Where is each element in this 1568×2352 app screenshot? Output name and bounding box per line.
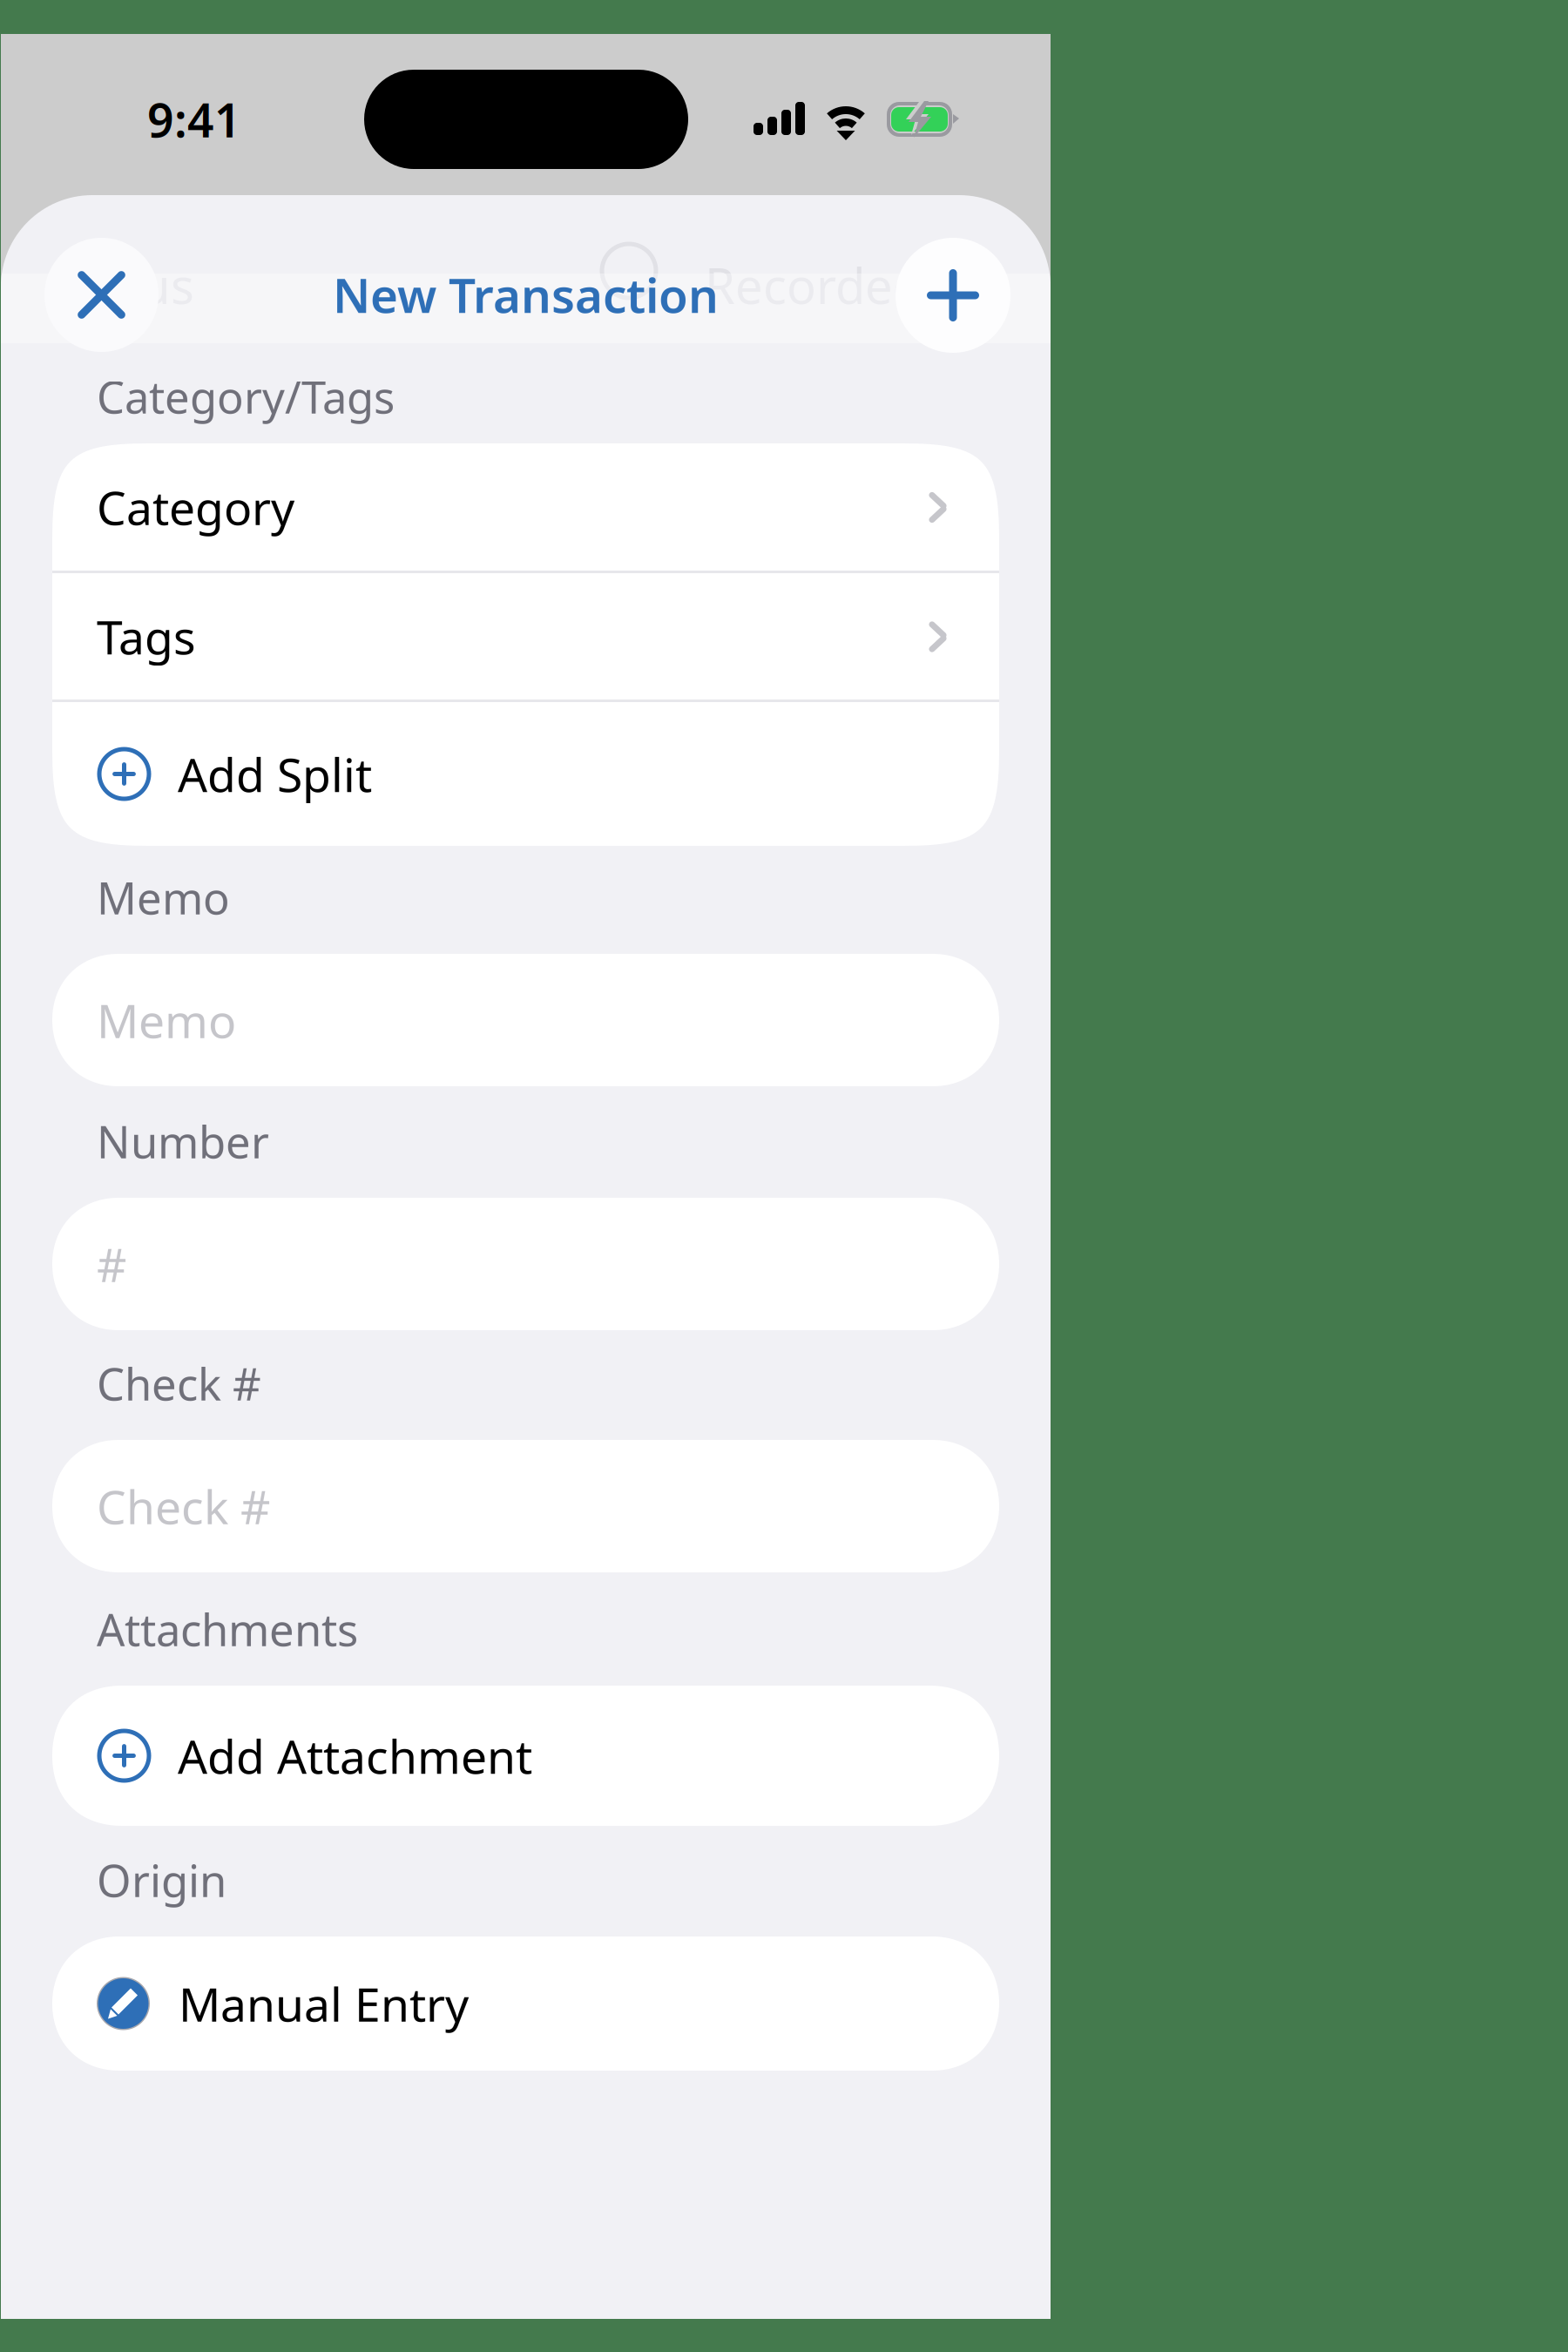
staticText: Check # — [97, 1475, 270, 1537]
staticText: Recorded — [705, 253, 923, 317]
staticText: Category — [97, 476, 294, 538]
staticText: 9:41 — [147, 89, 241, 150]
staticText: Memo — [97, 868, 230, 927]
staticText: Add Split — [178, 743, 372, 805]
button[interactable]: Tags — [52, 573, 999, 700]
button[interactable]: Close — [44, 238, 159, 352]
button[interactable]: Category — [52, 443, 999, 571]
staticText: Tags — [97, 606, 196, 667]
staticText: Number — [97, 1112, 269, 1171]
button[interactable]: Manual Entry — [52, 1936, 999, 2071]
staticText: Memo — [97, 989, 236, 1051]
button[interactable]: # — [52, 1198, 999, 1330]
staticText: Check # — [97, 1354, 261, 1413]
staticText: tus — [123, 253, 194, 317]
staticText: Origin — [97, 1851, 226, 1909]
button[interactable]: Add Attachment — [52, 1686, 999, 1826]
staticText: Manual Entry — [179, 1973, 469, 2034]
staticText: # — [97, 1233, 126, 1295]
button[interactable]: Check # — [52, 1440, 999, 1572]
staticText: New Transaction — [333, 263, 719, 326]
staticText: Attachments — [97, 1600, 358, 1658]
staticText: Category/Tags — [97, 367, 395, 426]
staticText: Add Attachment — [178, 1725, 532, 1787]
button[interactable]: Add — [896, 238, 1010, 353]
button[interactable]: Memo — [52, 954, 999, 1086]
button[interactable]: Add Split — [52, 702, 999, 846]
